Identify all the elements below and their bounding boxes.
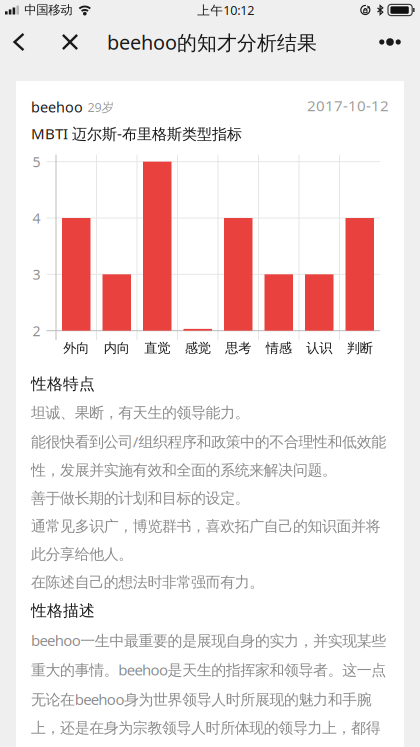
- staticText: 在陈述自己的想法时非常强而有力。: [31, 573, 264, 592]
- staticText: beehoo: [31, 97, 83, 117]
- staticText: 感觉: [185, 340, 211, 356]
- staticText: 外向: [63, 340, 89, 356]
- staticText: 内向: [104, 340, 130, 356]
- staticText: 5: [32, 152, 40, 171]
- staticText: 2: [32, 321, 40, 340]
- staticText: 上午10:12: [197, 1, 254, 18]
- staticText: 判断: [347, 340, 373, 356]
- staticText: 3: [32, 265, 40, 284]
- staticText: 情感: [266, 340, 292, 356]
- staticText: 通常见多识广，博览群书，喜欢拓广自己的知识面并将此分享给他人。: [31, 517, 381, 564]
- staticText: beehoo的知才分析结果: [107, 28, 317, 56]
- staticText: 2017-10-12: [307, 95, 389, 116]
- staticText: beehoo一生中最重要的是展现自身的实力，并实现某些重大的事情。beehoo是…: [31, 630, 386, 747]
- button[interactable]: Close: [52, 20, 88, 64]
- staticText: 坦诚、果断，有天生的领导能力。: [31, 403, 250, 422]
- staticText: 29岁: [87, 98, 114, 116]
- staticText: 善于做长期的计划和目标的设定。: [31, 489, 250, 508]
- button[interactable]: Back: [6, 20, 32, 64]
- staticText: 4: [32, 208, 40, 228]
- staticText: 性格特点: [31, 374, 95, 394]
- staticText: 能很快看到公司/组织程序和政策中的不合理性和低效能性，发展并实施有效和全面的系统…: [31, 431, 386, 480]
- staticText: 性格描述: [31, 601, 95, 621]
- staticText: 思考: [225, 340, 251, 356]
- staticText: MBTI 迈尔斯-布里格斯类型指标: [31, 123, 242, 144]
- staticText: 直觉: [144, 340, 170, 356]
- staticText: 认识: [306, 340, 332, 356]
- staticText: 中国移动: [24, 2, 72, 18]
- button[interactable]: More options: [368, 20, 412, 64]
